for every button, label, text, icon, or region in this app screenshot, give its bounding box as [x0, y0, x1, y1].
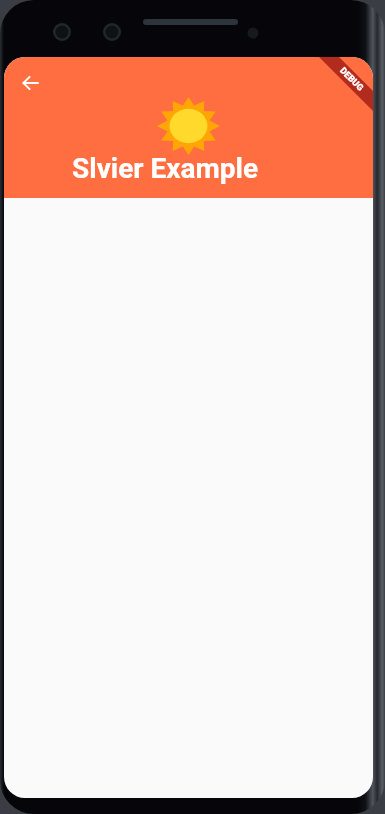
button[interactable]: Back — [10, 63, 50, 103]
staticText: DEBUG — [337, 65, 366, 94]
staticText: Slvier Example — [72, 152, 259, 185]
